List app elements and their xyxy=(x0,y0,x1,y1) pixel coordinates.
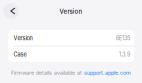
staticText: 6E135 xyxy=(116,35,130,41)
button[interactable]: Version xyxy=(8,30,134,46)
button[interactable]: Case xyxy=(8,46,134,62)
staticText: support.apple.com xyxy=(84,69,131,76)
button[interactable]: support.apple.com xyxy=(84,69,131,76)
staticText: 1.3.9 xyxy=(119,51,130,58)
staticText: Case xyxy=(13,51,26,58)
button[interactable]: Back xyxy=(0,0,22,22)
staticText: Version xyxy=(13,35,32,41)
staticText: Firmware details available at xyxy=(11,69,84,76)
staticText: Version xyxy=(59,8,82,15)
